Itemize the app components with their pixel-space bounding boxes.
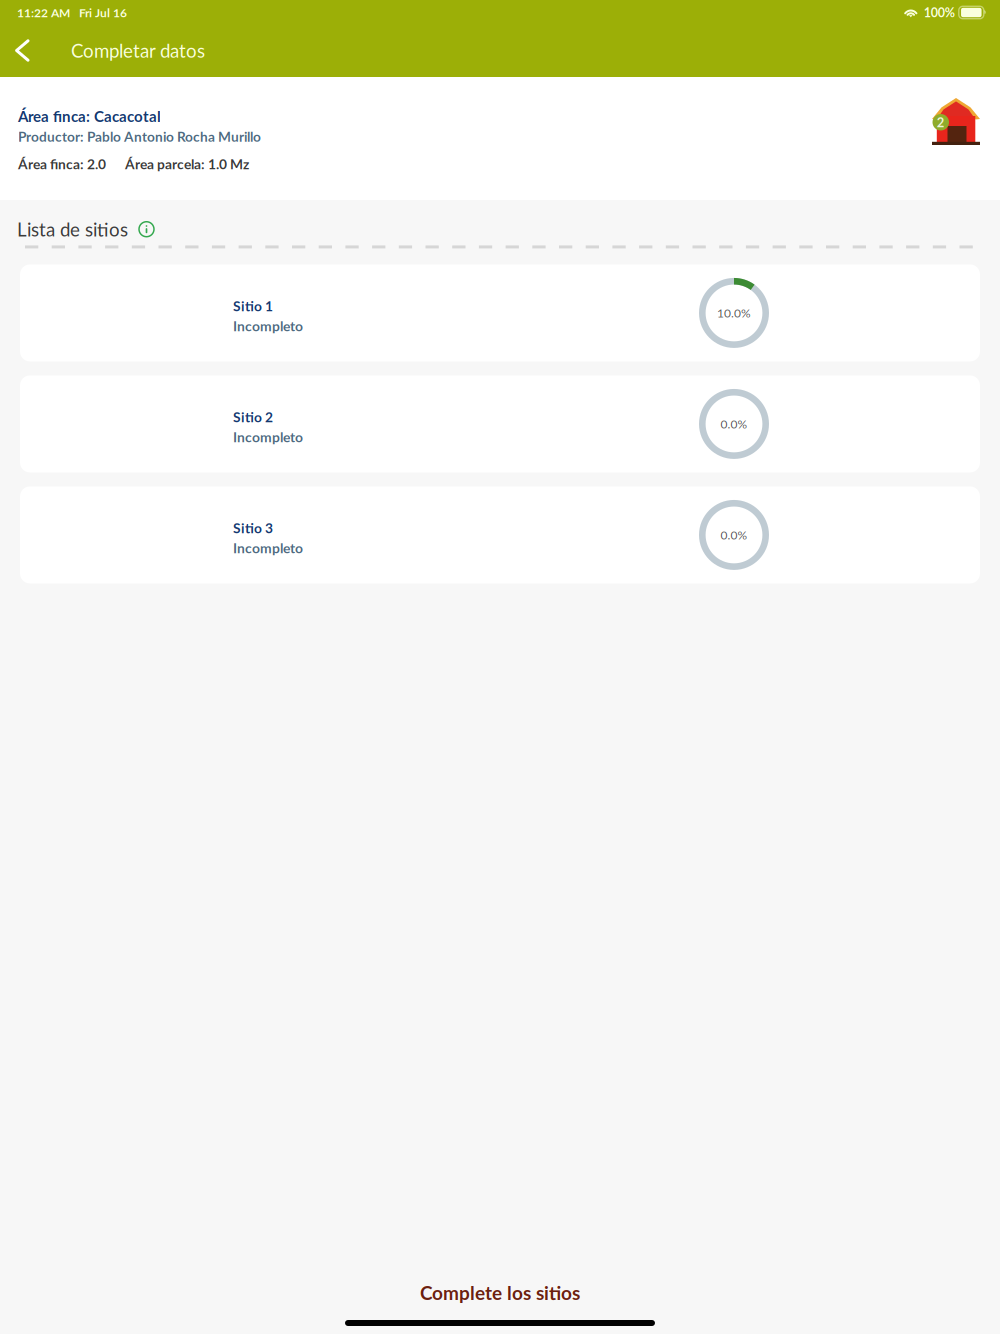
staticText: Incompleto [233, 429, 303, 445]
staticText: 10.0% [717, 306, 751, 320]
staticText: 11:22 AM [17, 5, 70, 20]
staticText: Área finca: Cacacotal [18, 107, 161, 125]
staticText: Incompleto [233, 318, 303, 334]
staticText: Sitio 1 [233, 298, 273, 314]
staticText: Sitio 2 [233, 409, 273, 425]
staticText: Área finca: 2.0 [18, 156, 106, 172]
staticText: 2 [937, 114, 945, 130]
staticText: Completar datos [71, 39, 205, 62]
staticText: Incompleto [233, 540, 303, 556]
button[interactable]: Back [0, 24, 45, 76]
button[interactable]: Sitio 3 [20, 486, 980, 583]
staticText: Área parcela: 1.0 Mz [125, 156, 249, 172]
staticText: 100% [924, 5, 955, 20]
staticText: Sitio 3 [233, 520, 273, 536]
staticText: 0.0% [720, 417, 747, 431]
staticText: 0.0% [720, 528, 747, 542]
staticText: Productor: Pablo Antonio Rocha Murillo [18, 128, 261, 144]
staticText: Fri Jul 16 [79, 5, 127, 20]
button[interactable]: Sitio 2 [20, 375, 980, 472]
staticText: Complete los sitios [420, 1281, 580, 1304]
button[interactable]: Sitio 1 [20, 264, 980, 361]
staticText: Lista de sitios [17, 218, 128, 240]
